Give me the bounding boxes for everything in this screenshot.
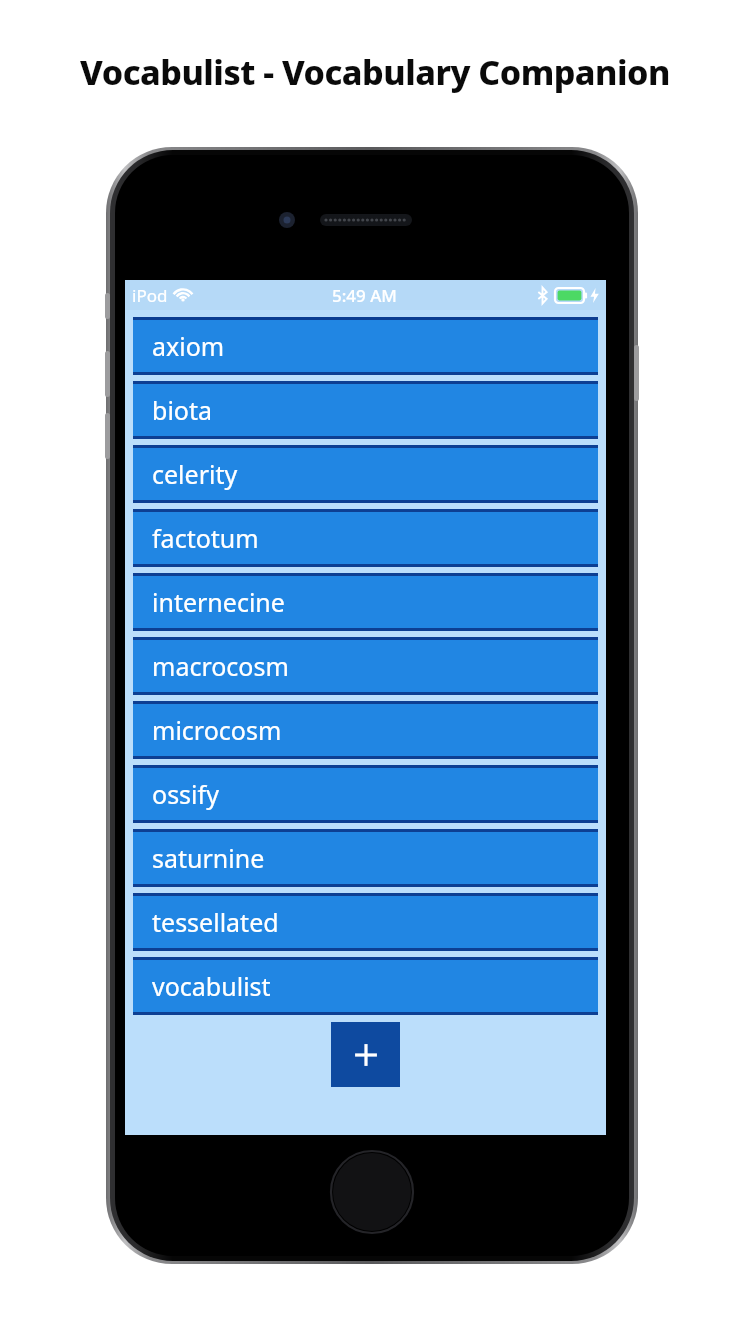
staticText: vocabulist <box>152 969 271 1003</box>
staticText: iPod <box>132 284 168 307</box>
button[interactable]: ossify <box>133 765 598 823</box>
staticText: 5:49 AM <box>332 284 397 307</box>
staticText: factotum <box>152 521 259 555</box>
staticText: Vocabulist - Vocabulary Companion <box>80 49 670 95</box>
button[interactable]: factotum <box>133 509 598 567</box>
staticText: microcosm <box>152 713 282 747</box>
button[interactable]: vocabulist <box>133 957 598 1015</box>
staticText: axiom <box>152 329 225 363</box>
staticText: saturnine <box>152 841 265 875</box>
button[interactable]: internecine <box>133 573 598 631</box>
staticText: biota <box>152 393 213 427</box>
button[interactable]: Add word <box>331 1022 400 1087</box>
staticText: celerity <box>152 457 238 491</box>
staticText: macrocosm <box>152 649 289 683</box>
button[interactable]: tessellated <box>133 893 598 951</box>
button[interactable]: saturnine <box>133 829 598 887</box>
button[interactable]: axiom <box>133 317 598 375</box>
staticText: tessellated <box>152 905 279 939</box>
button[interactable]: celerity <box>133 445 598 503</box>
staticText: internecine <box>152 585 285 619</box>
button[interactable]: macrocosm <box>133 637 598 695</box>
button[interactable]: biota <box>133 381 598 439</box>
button[interactable]: microcosm <box>133 701 598 759</box>
staticText: ossify <box>152 777 219 811</box>
